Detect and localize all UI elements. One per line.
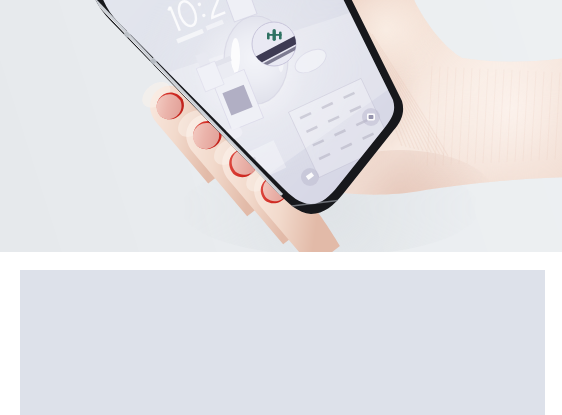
button[interactable] xyxy=(0,0,562,415)
